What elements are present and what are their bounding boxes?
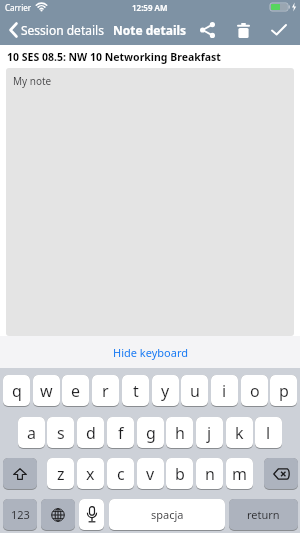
button[interactable]: [41, 499, 75, 530]
staticText: o: [250, 380, 260, 402]
staticText: r: [102, 380, 109, 402]
button[interactable]: e: [62, 375, 89, 406]
button[interactable]: m: [226, 458, 253, 489]
staticText: w: [40, 380, 53, 402]
button[interactable]: o: [241, 375, 268, 406]
staticText: p: [279, 380, 289, 402]
staticText: g: [146, 422, 156, 444]
staticText: My note: [13, 74, 52, 88]
staticText: return: [247, 507, 280, 522]
staticText: j: [207, 422, 212, 444]
staticText: m: [232, 463, 247, 485]
staticText: d: [86, 422, 96, 444]
staticText: Session details: [21, 22, 104, 38]
staticText: c: [117, 463, 125, 485]
staticText: q: [12, 380, 22, 402]
button[interactable]: g: [137, 417, 164, 448]
button[interactable]: My note: [6, 68, 294, 336]
button[interactable]: u: [181, 375, 208, 406]
button[interactable]: l: [255, 417, 282, 448]
button[interactable]: [3, 458, 37, 489]
staticText: 123: [11, 507, 30, 522]
button[interactable]: x: [77, 458, 104, 489]
button[interactable]: w: [33, 375, 60, 406]
button[interactable]: [230, 17, 256, 43]
button[interactable]: n: [196, 458, 223, 489]
button[interactable]: t: [122, 375, 149, 406]
button[interactable]: b: [166, 458, 193, 489]
staticText: f: [118, 422, 124, 444]
staticText: l: [266, 422, 271, 444]
staticText: y: [161, 380, 170, 402]
staticText: i: [222, 380, 227, 402]
staticText: Carrier: [5, 2, 32, 13]
button[interactable]: p: [270, 375, 297, 406]
staticText: k: [235, 422, 244, 444]
button[interactable]: k: [226, 417, 253, 448]
button[interactable]: j: [196, 417, 223, 448]
button[interactable]: [264, 458, 298, 489]
staticText: spacja: [151, 507, 184, 522]
button[interactable]: h: [166, 417, 193, 448]
staticText: 12:59 AM: [132, 2, 168, 13]
staticText: 10 SES 08.5: NW 10 Networking Breakfast: [7, 50, 221, 64]
button[interactable]: y: [152, 375, 179, 406]
staticText: u: [190, 380, 200, 402]
staticText: Hide keyboard: [113, 345, 188, 360]
button[interactable]: a: [18, 417, 45, 448]
staticText: n: [205, 463, 215, 485]
button[interactable]: Session details: [9, 22, 104, 38]
staticText: Note details: [113, 22, 187, 38]
button[interactable]: return: [229, 499, 298, 530]
staticText: s: [57, 422, 65, 444]
staticText: v: [146, 463, 155, 485]
staticText: e: [71, 380, 81, 402]
staticText: z: [57, 463, 65, 485]
button[interactable]: s: [47, 417, 74, 448]
button[interactable]: [194, 17, 220, 43]
button[interactable]: 123: [3, 499, 37, 530]
button[interactable]: d: [77, 417, 104, 448]
button[interactable]: c: [107, 458, 134, 489]
button[interactable]: f: [107, 417, 134, 448]
button[interactable]: spacja: [109, 499, 225, 530]
button[interactable]: q: [3, 375, 30, 406]
button[interactable]: z: [47, 458, 74, 489]
button[interactable]: Hide keyboard: [0, 336, 300, 368]
button[interactable]: r: [92, 375, 119, 406]
button[interactable]: [266, 17, 292, 43]
button[interactable]: i: [211, 375, 238, 406]
staticText: h: [175, 422, 185, 444]
staticText: b: [175, 463, 185, 485]
staticText: x: [86, 463, 95, 485]
staticText: t: [133, 380, 139, 402]
staticText: a: [27, 422, 36, 444]
button[interactable]: v: [137, 458, 164, 489]
button[interactable]: [79, 499, 104, 530]
